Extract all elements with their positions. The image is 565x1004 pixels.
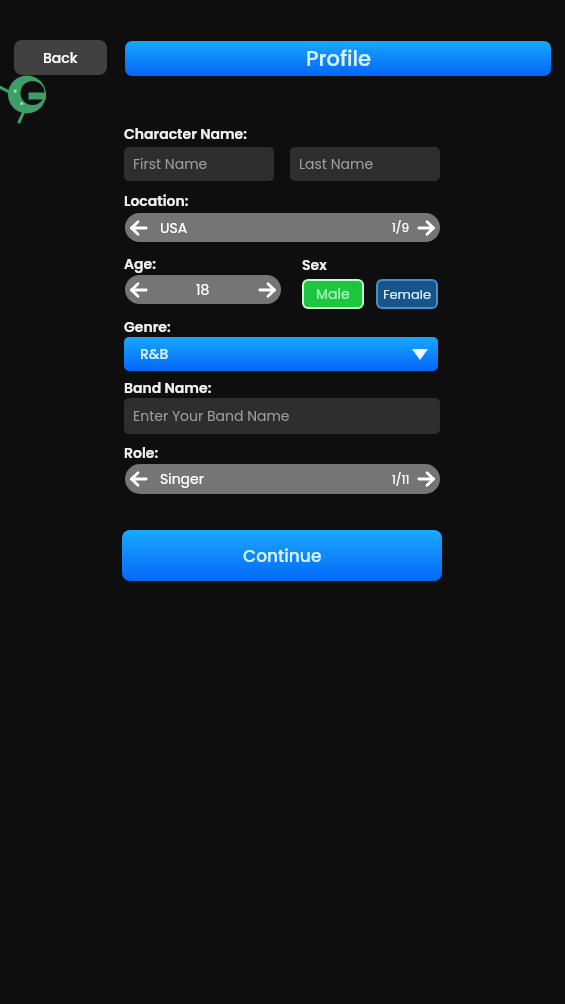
staticText: Location: bbox=[124, 191, 189, 211]
button[interactable]: Singer bbox=[125, 464, 440, 494]
staticText: R&B bbox=[140, 344, 169, 364]
staticText: USA bbox=[160, 218, 188, 238]
button[interactable]: Female bbox=[376, 279, 438, 309]
staticText: 1/11 bbox=[392, 471, 410, 488]
staticText: Male bbox=[316, 284, 350, 304]
button[interactable]: First Name bbox=[124, 147, 274, 181]
staticText: Back bbox=[43, 48, 78, 68]
staticText: Role: bbox=[124, 443, 159, 463]
staticText: Female bbox=[383, 285, 432, 303]
button[interactable]: USA bbox=[125, 213, 440, 242]
button[interactable]: Profile bbox=[125, 41, 551, 76]
staticText: Enter Your Band Name bbox=[133, 406, 290, 426]
button[interactable]: Continue bbox=[122, 530, 442, 581]
button[interactable]: Last Name bbox=[290, 147, 440, 181]
staticText: Singer bbox=[160, 469, 204, 489]
button[interactable]: Male bbox=[302, 279, 364, 309]
button[interactable]: R&B bbox=[124, 337, 438, 371]
staticText: First Name bbox=[133, 154, 208, 174]
button[interactable]: 18 bbox=[125, 275, 281, 304]
staticText: Continue bbox=[243, 544, 322, 568]
staticText: Last Name bbox=[299, 154, 374, 174]
staticText: Age: bbox=[124, 254, 156, 274]
staticText: Profile bbox=[306, 44, 371, 73]
staticText: Genre: bbox=[124, 317, 171, 337]
button[interactable]: Back bbox=[14, 40, 107, 75]
button[interactable]: Enter Your Band Name bbox=[124, 398, 440, 434]
staticText: Character Name: bbox=[124, 124, 247, 144]
staticText: Sex bbox=[302, 255, 327, 275]
other: App logo bbox=[0, 68, 56, 120]
staticText: Band Name: bbox=[124, 378, 212, 398]
staticText: 1/9 bbox=[392, 219, 410, 236]
staticText: 18 bbox=[196, 280, 210, 300]
